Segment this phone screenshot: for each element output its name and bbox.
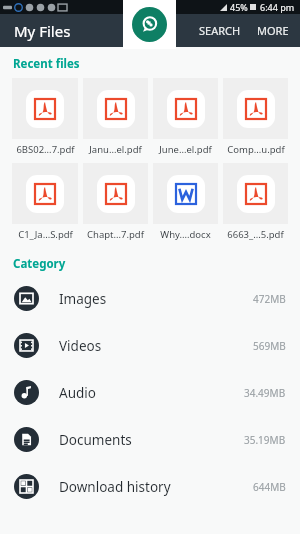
- staticText: 6BS02…7.pdf: [16, 143, 75, 156]
- staticText: 45%: [230, 1, 248, 13]
- button[interactable]: Download history: [0, 463, 300, 510]
- staticText: Recent files: [13, 56, 80, 72]
- button[interactable]: Why.…docx: [153, 163, 218, 241]
- staticText: My Files: [14, 21, 71, 41]
- staticText: 6663_…5.pdf: [227, 228, 284, 241]
- staticText: 34.49MB: [244, 386, 286, 400]
- button[interactable]: My Files: [0, 15, 79, 47]
- staticText: Why.…docx: [160, 228, 211, 241]
- button[interactable]: Videos: [0, 322, 300, 369]
- button[interactable]: SEARCH: [191, 16, 249, 45]
- staticText: MORE: [257, 23, 289, 38]
- staticText: Audio: [59, 384, 96, 402]
- staticText: 6:44 pm: [260, 1, 295, 13]
- staticText: 35.19MB: [244, 433, 286, 447]
- button[interactable]: Comp…u.pdf: [223, 78, 288, 156]
- staticText: Documents: [59, 431, 132, 449]
- staticText: Chapt…7.pdf: [87, 228, 144, 241]
- button[interactable]: Images: [0, 275, 300, 322]
- staticText: Janu…el.pdf: [89, 143, 142, 156]
- staticText: 644MB: [253, 480, 286, 494]
- button[interactable]: Chapt…7.pdf: [83, 163, 148, 241]
- staticText: June…el.pdf: [159, 143, 212, 156]
- button[interactable]: Audio: [0, 369, 300, 416]
- button[interactable]: WhatsApp: [123, 0, 176, 49]
- staticText: Images: [59, 290, 107, 308]
- staticText: 569MB: [253, 339, 286, 353]
- staticText: Videos: [59, 337, 102, 355]
- button[interactable]: June…el.pdf: [153, 78, 218, 156]
- staticText: Download history: [59, 478, 171, 496]
- staticText: Category: [13, 256, 66, 272]
- staticText: Comp…u.pdf: [227, 143, 285, 156]
- button[interactable]: MORE: [249, 16, 300, 45]
- button[interactable]: C1_Ja…S.pdf: [12, 163, 78, 241]
- button[interactable]: Janu…el.pdf: [83, 78, 148, 156]
- button[interactable]: 6BS02…7.pdf: [12, 78, 78, 156]
- button[interactable]: 6663_…5.pdf: [223, 163, 288, 241]
- staticText: C1_Ja…S.pdf: [18, 228, 73, 241]
- button[interactable]: Documents: [0, 416, 300, 463]
- staticText: SEARCH: [199, 23, 241, 38]
- staticText: 472MB: [253, 292, 286, 306]
